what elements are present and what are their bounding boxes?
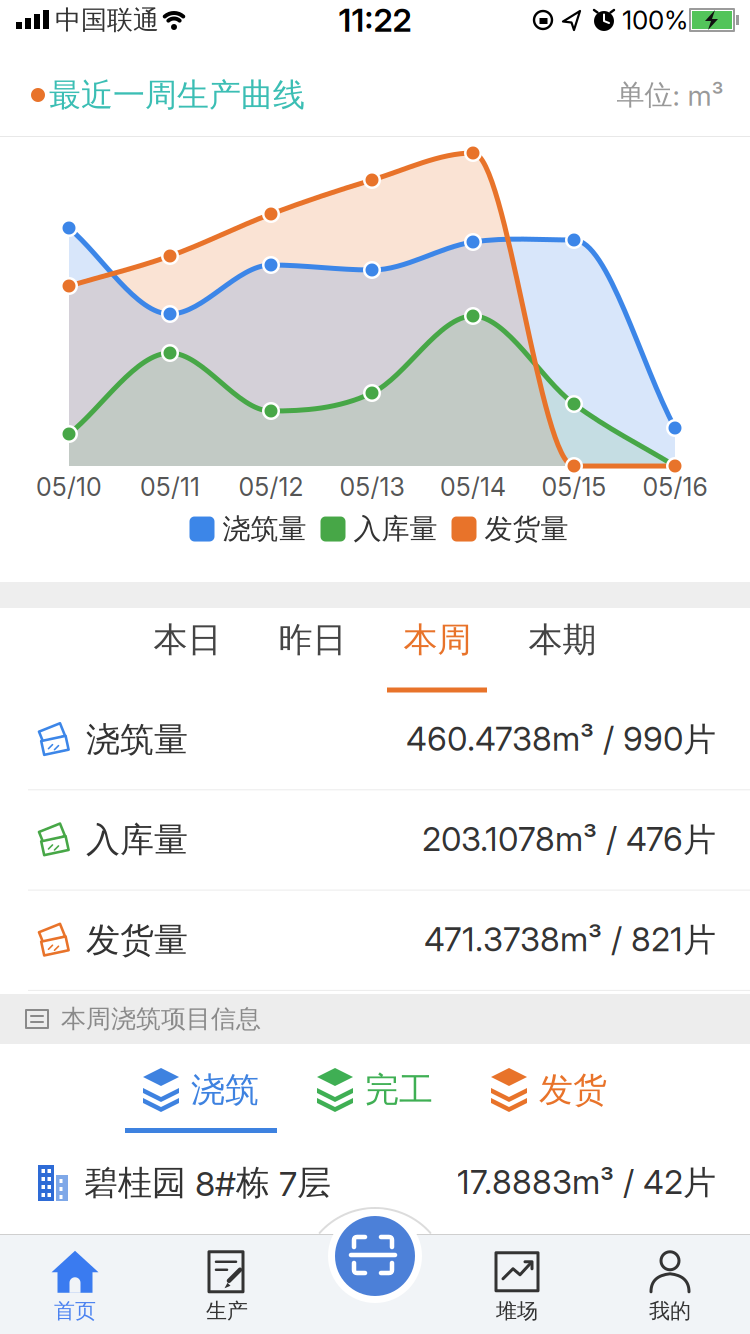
- staticText: 浇筑: [191, 1069, 259, 1111]
- staticText: 471.3738m³ / 821片: [424, 919, 716, 961]
- staticText: 17.8883m³ / 42片: [457, 1162, 716, 1204]
- staticText: 05/10: [36, 472, 102, 502]
- button[interactable]: 浇筑: [143, 1068, 259, 1112]
- staticText: 生产: [206, 1298, 248, 1324]
- staticText: 05/13: [339, 472, 404, 502]
- staticText: 中国联通: [55, 4, 159, 36]
- button[interactable]: 完工: [317, 1068, 433, 1112]
- staticText: 发货: [539, 1069, 607, 1111]
- staticText: 完工: [365, 1069, 433, 1111]
- button[interactable]: [335, 1216, 415, 1296]
- staticText: 入库量: [353, 511, 437, 547]
- staticText: 05/16: [642, 472, 707, 502]
- staticText: 碧桂园 8#栋 7层: [84, 1162, 331, 1204]
- button[interactable]: 首页: [15, 1246, 135, 1326]
- staticText: 本周: [403, 619, 471, 661]
- staticText: 堆场: [496, 1298, 538, 1324]
- staticText: 本期: [528, 619, 596, 661]
- staticText: 本日: [153, 619, 221, 661]
- staticText: 460.4738m³ / 990片: [406, 719, 716, 761]
- staticText: 11:22: [338, 1, 411, 39]
- staticText: 发货量: [484, 511, 568, 547]
- staticText: 05/11: [140, 472, 200, 502]
- staticText: 05/15: [541, 472, 606, 502]
- button[interactable]: 发货: [491, 1068, 607, 1112]
- staticText: 首页: [54, 1298, 96, 1324]
- button[interactable]: 本期: [500, 615, 625, 665]
- staticText: 我的: [649, 1298, 691, 1324]
- button[interactable]: 生产: [167, 1246, 287, 1326]
- button[interactable]: 本日: [125, 615, 250, 665]
- staticText: 本周浇筑项目信息: [61, 1003, 261, 1035]
- staticText: 入库量: [86, 818, 188, 861]
- staticText: 05/12: [238, 472, 303, 502]
- staticText: 浇筑量: [86, 718, 188, 761]
- staticText: 100%: [622, 4, 688, 36]
- staticText: 05/14: [440, 472, 506, 502]
- staticText: 203.1078m³ / 476片: [422, 819, 716, 861]
- staticText: 最近一周生产曲线: [49, 75, 305, 115]
- button[interactable]: 我的: [610, 1246, 730, 1326]
- staticText: 单位: m³: [616, 77, 723, 113]
- button[interactable]: 昨日: [250, 615, 375, 665]
- staticText: 浇筑量: [222, 511, 306, 547]
- staticText: 发货量: [86, 919, 188, 962]
- staticText: 昨日: [278, 619, 346, 661]
- button[interactable]: 碧桂园 8#栋 7层: [0, 1153, 750, 1213]
- button[interactable]: 堆场: [457, 1246, 577, 1326]
- button[interactable]: 本周: [375, 615, 500, 665]
